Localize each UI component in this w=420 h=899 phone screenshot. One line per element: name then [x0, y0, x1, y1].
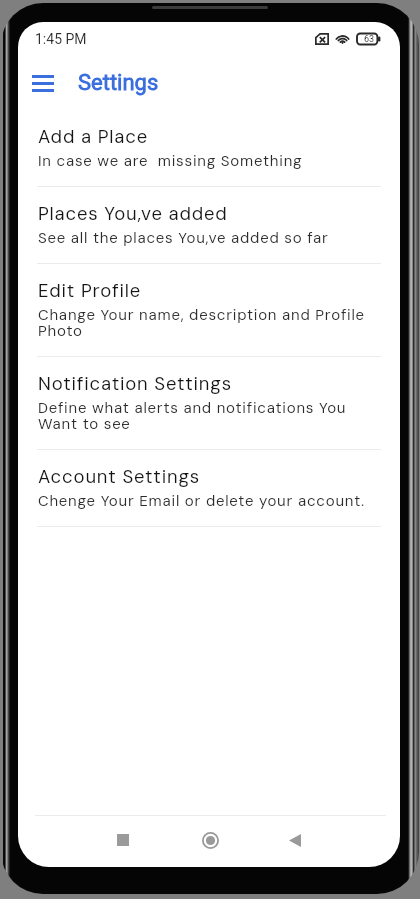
staticText: Places You,ve added: [38, 202, 228, 226]
button[interactable]: Edit Profile: [18, 264, 400, 357]
staticText: See all the places You,ve added so far: [38, 228, 329, 248]
staticText: 63: [364, 34, 375, 45]
staticText: Add a Place: [38, 125, 149, 149]
button[interactable]: Places You,ve added: [18, 187, 400, 264]
staticText: Notification Settings: [38, 372, 232, 396]
button[interactable]: Notification Settings: [18, 357, 400, 450]
staticText: Edit Profile: [38, 279, 142, 303]
staticText: Account Settings: [38, 465, 201, 489]
staticText: Change Your name, description and Profil…: [38, 305, 382, 341]
button[interactable]: Open navigation menu: [24, 64, 62, 102]
button[interactable]: Account Settings: [18, 450, 400, 527]
staticText: Settings: [78, 70, 159, 96]
staticText: In case we are missing Something: [38, 151, 303, 171]
button[interactable]: Add a Place: [18, 110, 400, 187]
button[interactable]: Recent apps: [101, 816, 145, 864]
staticText: Define what alerts and notifications You…: [38, 398, 382, 434]
staticText: Chenge Your Email or delete your account…: [38, 491, 365, 511]
button[interactable]: Back: [273, 816, 317, 864]
button[interactable]: Home: [188, 816, 232, 864]
staticText: 1:45 PM: [35, 31, 87, 47]
